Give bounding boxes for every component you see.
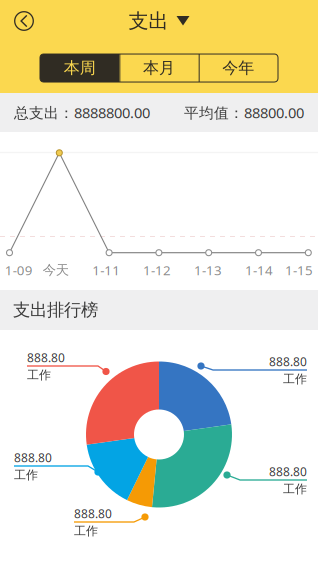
staticText: 今年 [222,58,254,78]
staticText: 工作 [74,524,98,538]
staticText: 1-14 [245,261,273,279]
staticText: 888.80 [269,354,307,370]
staticText: 本月 [143,58,175,78]
staticText: 1-15 [285,261,313,279]
button[interactable]: 今年 [199,54,278,82]
button[interactable]: 本周 [40,54,119,82]
staticText: 888.80 [74,506,112,522]
staticText: 888.80 [14,450,52,466]
button[interactable]: Back [7,4,41,38]
staticText: 本周 [64,58,96,78]
staticText: 平均值：88800.00 [184,103,304,122]
button[interactable]: 支出 [120,5,197,37]
staticText: 工作 [27,368,51,382]
staticText: 工作 [14,468,38,482]
staticText: 888.80 [269,464,307,480]
staticText: 支出 [128,9,168,33]
staticText: 工作 [283,372,307,386]
staticText: 工作 [283,482,307,496]
button[interactable]: 本月 [119,54,199,82]
staticText: 1-11 [92,261,120,279]
staticText: 1-09 [5,261,33,279]
staticText: 支出排行榜 [13,299,98,321]
staticText: 888.80 [27,350,65,366]
staticText: 今天 [43,262,69,278]
staticText: 1-13 [194,261,222,279]
staticText: 1-12 [143,261,171,279]
staticText: 总支出：8888800.00 [14,103,150,122]
